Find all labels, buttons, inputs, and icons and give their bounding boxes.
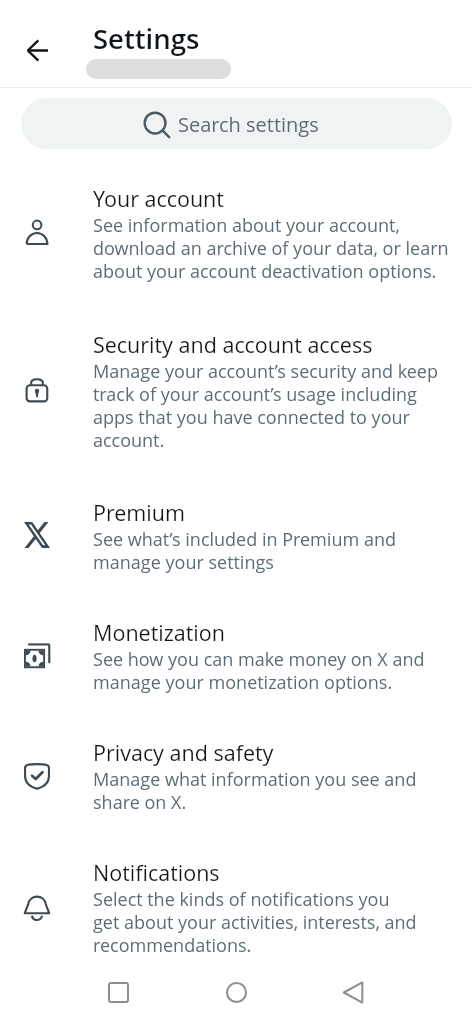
button[interactable]: Search settings bbox=[21, 98, 452, 149]
staticText: Manage your account’s security and keep … bbox=[93, 359, 438, 453]
staticText: Select the kinds of notifications you ge… bbox=[93, 887, 417, 958]
button[interactable] bbox=[0, 166, 472, 312]
staticText: See what’s included in Premium and manag… bbox=[93, 527, 396, 575]
staticText: Monetization bbox=[93, 618, 225, 647]
button[interactable] bbox=[0, 840, 472, 967]
button[interactable] bbox=[0, 720, 472, 840]
staticText: See information about your account, down… bbox=[93, 213, 449, 284]
button[interactable]: Back bbox=[16, 29, 58, 71]
button[interactable] bbox=[0, 480, 472, 601]
button[interactable] bbox=[0, 312, 472, 480]
button[interactable]: Recent apps bbox=[96, 970, 140, 1014]
button[interactable]: Back bbox=[331, 970, 375, 1014]
staticText: Premium bbox=[93, 498, 185, 527]
staticText: Notifications bbox=[93, 858, 220, 887]
staticText: Privacy and safety bbox=[93, 738, 274, 767]
staticText: See how you can make money on X and mana… bbox=[93, 647, 425, 695]
button[interactable] bbox=[0, 600, 472, 720]
button[interactable]: Home bbox=[214, 970, 258, 1014]
staticText: Search settings bbox=[178, 111, 319, 138]
staticText: Manage what information you see and shar… bbox=[93, 767, 417, 815]
staticText: Settings bbox=[93, 20, 200, 57]
staticText: Your account bbox=[93, 184, 224, 213]
staticText: Security and account access bbox=[93, 330, 373, 359]
